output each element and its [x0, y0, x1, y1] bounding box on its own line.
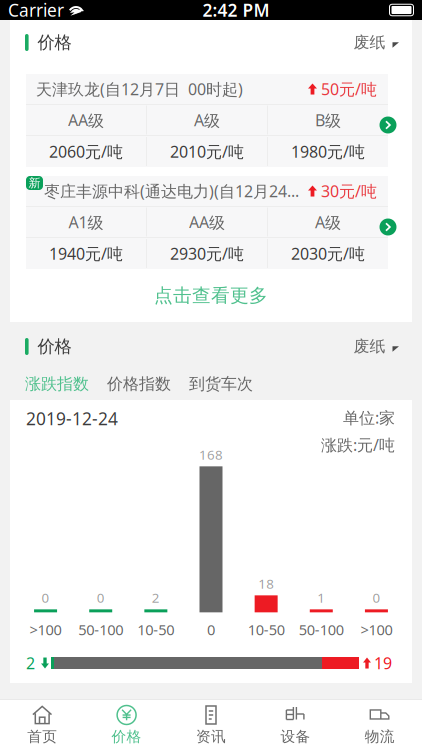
staticText: 涨跌指数 — [25, 374, 89, 394]
button[interactable]: 首页 — [0, 700, 84, 750]
staticText: 涨跌:元/吨 — [321, 434, 395, 455]
staticText: 2930元/吨 — [170, 243, 244, 264]
staticText: 价格指数 — [107, 374, 171, 394]
staticText: 30元/吨 — [321, 180, 377, 202]
staticText: 天津玖龙(自12月7日 00时起) — [36, 78, 243, 100]
staticText: A级 — [194, 109, 220, 131]
staticText: 2030元/吨 — [291, 243, 365, 264]
staticText: B级 — [315, 109, 341, 131]
button[interactable]: 天津玖龙(自12月7日 00时起) — [26, 74, 388, 167]
staticText: AA级 — [189, 211, 225, 233]
staticText: 50-100 — [78, 620, 123, 639]
staticText: 资讯 — [196, 727, 226, 745]
staticText: 10-50 — [137, 620, 174, 639]
staticText: 枣庄丰源中科(通达电力)(自12月24日 0... — [44, 180, 302, 202]
staticText: 2060元/吨 — [49, 141, 123, 162]
staticText: 2019-12-24 — [26, 407, 118, 430]
staticText: 点击查看更多 — [154, 284, 268, 307]
staticText: 2 — [152, 589, 160, 606]
staticText: 50-100 — [299, 620, 344, 639]
button[interactable]: 价格指数 — [89, 369, 171, 399]
staticText: 50元/吨 — [321, 78, 377, 100]
staticText: 到货车次 — [189, 374, 253, 394]
staticText: 首页 — [27, 727, 57, 745]
staticText: 废纸 — [353, 337, 385, 356]
staticText: >100 — [30, 620, 62, 639]
staticText: 废纸 — [353, 33, 385, 52]
button[interactable]: 点击查看更多 — [10, 269, 412, 322]
staticText: 10-50 — [248, 620, 285, 639]
staticText: AA级 — [68, 109, 104, 131]
staticText: 价格 — [112, 727, 142, 745]
button[interactable]: 废纸 — [353, 25, 399, 60]
button[interactable]: 枣庄丰源中科(通达电力)(自12月24日 0... — [26, 176, 388, 269]
staticText: 1980元/吨 — [291, 141, 365, 162]
staticText: 19 — [374, 652, 392, 674]
button[interactable]: 到货车次 — [171, 369, 253, 399]
staticText: >100 — [360, 620, 392, 639]
button[interactable]: 设备 — [253, 700, 338, 750]
staticText: 1 — [317, 589, 325, 606]
button[interactable]: 废纸 — [353, 329, 399, 364]
staticText: 2010元/吨 — [170, 141, 244, 162]
staticText: 0 — [207, 620, 215, 639]
staticText: A1级 — [68, 211, 103, 233]
button[interactable]: 涨跌指数 — [25, 369, 89, 399]
staticText: Carrier — [8, 0, 64, 21]
staticText: 0 — [97, 589, 105, 606]
staticText: 0 — [372, 589, 380, 606]
staticText: 2:42 PM — [202, 0, 269, 21]
staticText: 价格 — [38, 32, 72, 53]
button[interactable]: 物流 — [338, 700, 422, 750]
staticText: 0 — [42, 589, 50, 606]
staticText: A级 — [315, 211, 341, 233]
button[interactable]: 资讯 — [169, 700, 253, 750]
staticText: 1940元/吨 — [49, 243, 123, 264]
staticText: 设备 — [280, 727, 310, 745]
staticText: 2 — [26, 652, 35, 674]
button[interactable]: 价格 — [84, 700, 169, 750]
staticText: 物流 — [365, 727, 395, 745]
staticText: 价格 — [38, 336, 72, 357]
staticText: 168 — [199, 446, 223, 463]
staticText: 单位:家 — [343, 407, 395, 428]
staticText: 新 — [28, 176, 40, 190]
staticText: 18 — [258, 575, 274, 592]
